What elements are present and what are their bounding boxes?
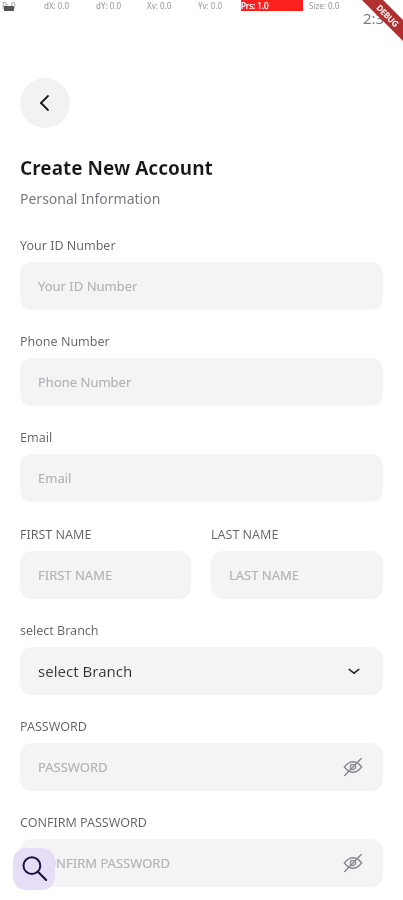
- button[interactable]: Show password: [341, 851, 365, 875]
- staticText: FIRST NAME: [38, 566, 113, 584]
- staticText: DEBUG: [374, 2, 402, 29]
- staticText: PASSWORD: [20, 718, 87, 735]
- staticText: Phone Number: [20, 333, 110, 350]
- staticText: select Branch: [38, 661, 133, 681]
- button[interactable]: Your ID Number: [20, 262, 383, 310]
- staticText: Create New Account: [20, 155, 213, 181]
- button[interactable]: LAST NAME: [211, 551, 383, 599]
- staticText: CONFIRM PASSWORD: [20, 814, 147, 831]
- button[interactable]: Email: [20, 454, 383, 502]
- staticText: LAST NAME: [211, 526, 279, 543]
- staticText: Email: [38, 469, 72, 487]
- staticText: Email: [20, 429, 53, 446]
- button[interactable]: Open branch list: [343, 660, 365, 682]
- staticText: dX: 0.0: [44, 0, 70, 11]
- button[interactable]: PASSWORD: [20, 743, 383, 791]
- staticText: Xv: 0.0: [147, 0, 172, 11]
- staticText: Your ID Number: [38, 277, 138, 295]
- staticText: Prs: 1.0: [241, 0, 269, 11]
- staticText: Size: 0.0: [309, 0, 340, 11]
- staticText: FIRST NAME: [20, 526, 92, 543]
- staticText: PASSWORD: [38, 758, 108, 776]
- staticText: P: 0: [2, 0, 16, 11]
- button[interactable]: FIRST NAME: [20, 551, 191, 599]
- button[interactable]: Show password: [341, 755, 365, 779]
- staticText: Personal Information: [20, 189, 161, 208]
- staticText: LAST NAME: [229, 566, 300, 584]
- button[interactable]: select Branch: [20, 647, 383, 695]
- staticText: dY: 0.0: [96, 0, 121, 11]
- staticText: Phone Number: [38, 373, 132, 391]
- button[interactable]: CONFIRM PASSWORD: [20, 839, 383, 887]
- button[interactable]: Phone Number: [20, 358, 383, 406]
- staticText: CONFIRM PASSWORD: [38, 854, 170, 872]
- staticText: Your ID Number: [20, 237, 116, 254]
- staticText: Yv: 0.0: [198, 0, 223, 11]
- button[interactable]: Search: [13, 848, 55, 890]
- button[interactable]: Back: [20, 78, 70, 128]
- staticText: select Branch: [20, 622, 99, 639]
- staticText: 2:37: [363, 8, 393, 28]
